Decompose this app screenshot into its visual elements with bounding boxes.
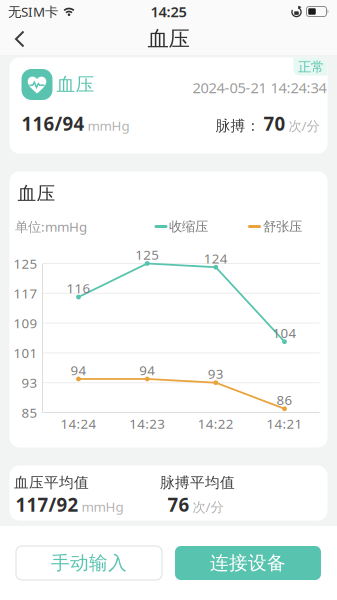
staticText: 收缩压 <box>169 218 208 235</box>
staticText: 连接设备 <box>210 551 286 574</box>
staticText: 109 <box>13 314 37 332</box>
staticText: 血压 <box>17 182 55 205</box>
staticText: 101 <box>13 344 37 362</box>
staticText: 正常 <box>298 59 324 75</box>
staticText: 舒张压 <box>263 218 302 235</box>
staticText: 14:24 <box>60 415 96 432</box>
staticText: 104 <box>272 324 296 342</box>
staticText: 93 <box>21 374 37 391</box>
staticText: 次/分 <box>288 117 319 135</box>
staticText: 血压平均值 <box>14 473 89 491</box>
staticText: 116/94 <box>21 111 84 136</box>
staticText: 14:22 <box>198 415 234 432</box>
staticText: 14:23 <box>129 415 165 432</box>
staticText: 次/分 <box>192 498 223 516</box>
staticText: 14:25 <box>150 2 186 21</box>
staticText: 94 <box>70 361 86 379</box>
staticText: 手动输入 <box>51 551 127 574</box>
staticText: 70 <box>263 111 285 136</box>
staticText: 93 <box>208 365 224 382</box>
staticText: mmHg <box>87 117 129 134</box>
button[interactable]: 返回 <box>0 24 27 53</box>
staticText: mmHg <box>81 498 123 515</box>
staticText: 85 <box>21 404 37 421</box>
button[interactable]: 连接设备 <box>175 546 321 580</box>
staticText: 125 <box>13 255 37 272</box>
staticText: 14:21 <box>266 415 302 432</box>
staticText: 116 <box>66 279 90 297</box>
staticText: 血压 <box>147 26 189 52</box>
button[interactable]: 手动输入 <box>16 546 162 580</box>
staticText: 无SIM卡 <box>8 3 58 20</box>
staticText: 脉搏： <box>215 117 260 135</box>
staticText: 单位:mmHg <box>15 218 87 235</box>
staticText: 125 <box>135 246 159 263</box>
staticText: 117 <box>13 284 37 302</box>
staticText: 117/92 <box>15 492 78 517</box>
staticText: 76 <box>167 492 189 517</box>
staticText: 94 <box>139 361 155 379</box>
staticText: 86 <box>276 391 292 409</box>
staticText: 血压 <box>56 73 94 96</box>
staticText: 124 <box>204 249 228 267</box>
staticText: 脉搏平均值 <box>160 473 235 491</box>
staticText: 2024-05-21 14:24:34 <box>192 78 326 97</box>
